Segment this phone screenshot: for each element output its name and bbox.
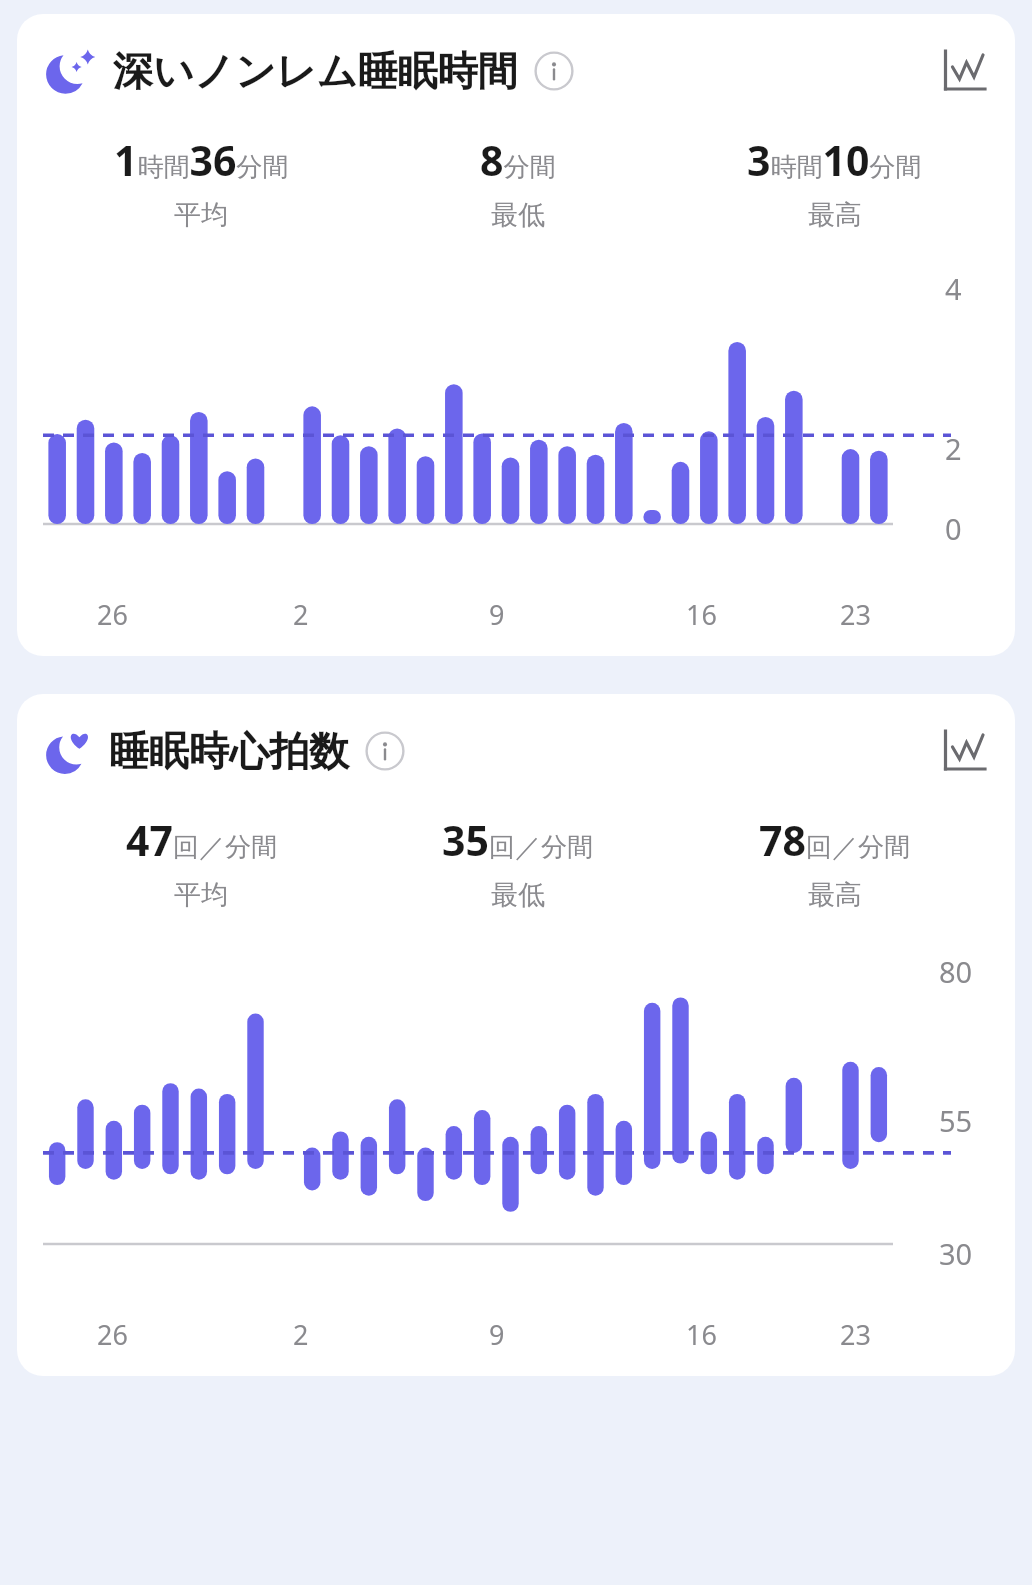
staticText: 9 [489,1316,505,1353]
button[interactable]: Info [363,729,407,773]
staticText: 26 [97,596,128,633]
staticText: 睡眠時心拍数 [109,726,349,776]
staticText: 30 [939,1234,973,1273]
staticText: 23 [840,596,871,633]
button[interactable]: Show chart [935,722,993,780]
staticText: 2 [293,1316,309,1353]
staticText: 16 [686,596,717,633]
staticText: 1時間36分間 [114,132,289,188]
staticText: 3時間10分間 [747,132,922,188]
staticText: 最低 [491,198,545,232]
button[interactable]: Show chart [935,42,993,100]
staticText: 16 [686,1316,717,1353]
button[interactable]: Info [532,49,576,93]
staticText: 47回／分間 [126,812,277,868]
staticText: 23 [840,1316,871,1353]
staticText: 2 [945,429,962,468]
staticText: 最高 [808,878,862,912]
staticText: 8分間 [480,132,556,188]
staticText: 平均 [174,878,228,912]
staticText: 深いノンレム睡眠時間 [113,46,518,96]
staticText: 55 [939,1101,973,1140]
button[interactable]: 深いノンレム睡眠時間 [17,14,1015,656]
staticText: 平均 [174,198,228,232]
staticText: 80 [939,952,973,991]
staticText: 9 [489,596,505,633]
staticText: 2 [293,596,309,633]
staticText: 35回／分間 [442,812,593,868]
button[interactable]: 睡眠時心拍数 [17,694,1015,1376]
staticText: 最高 [808,198,862,232]
staticText: 78回／分間 [759,812,910,868]
staticText: 4 [945,269,962,308]
staticText: 26 [97,1316,128,1353]
staticText: 0 [945,509,962,548]
staticText: 最低 [491,878,545,912]
